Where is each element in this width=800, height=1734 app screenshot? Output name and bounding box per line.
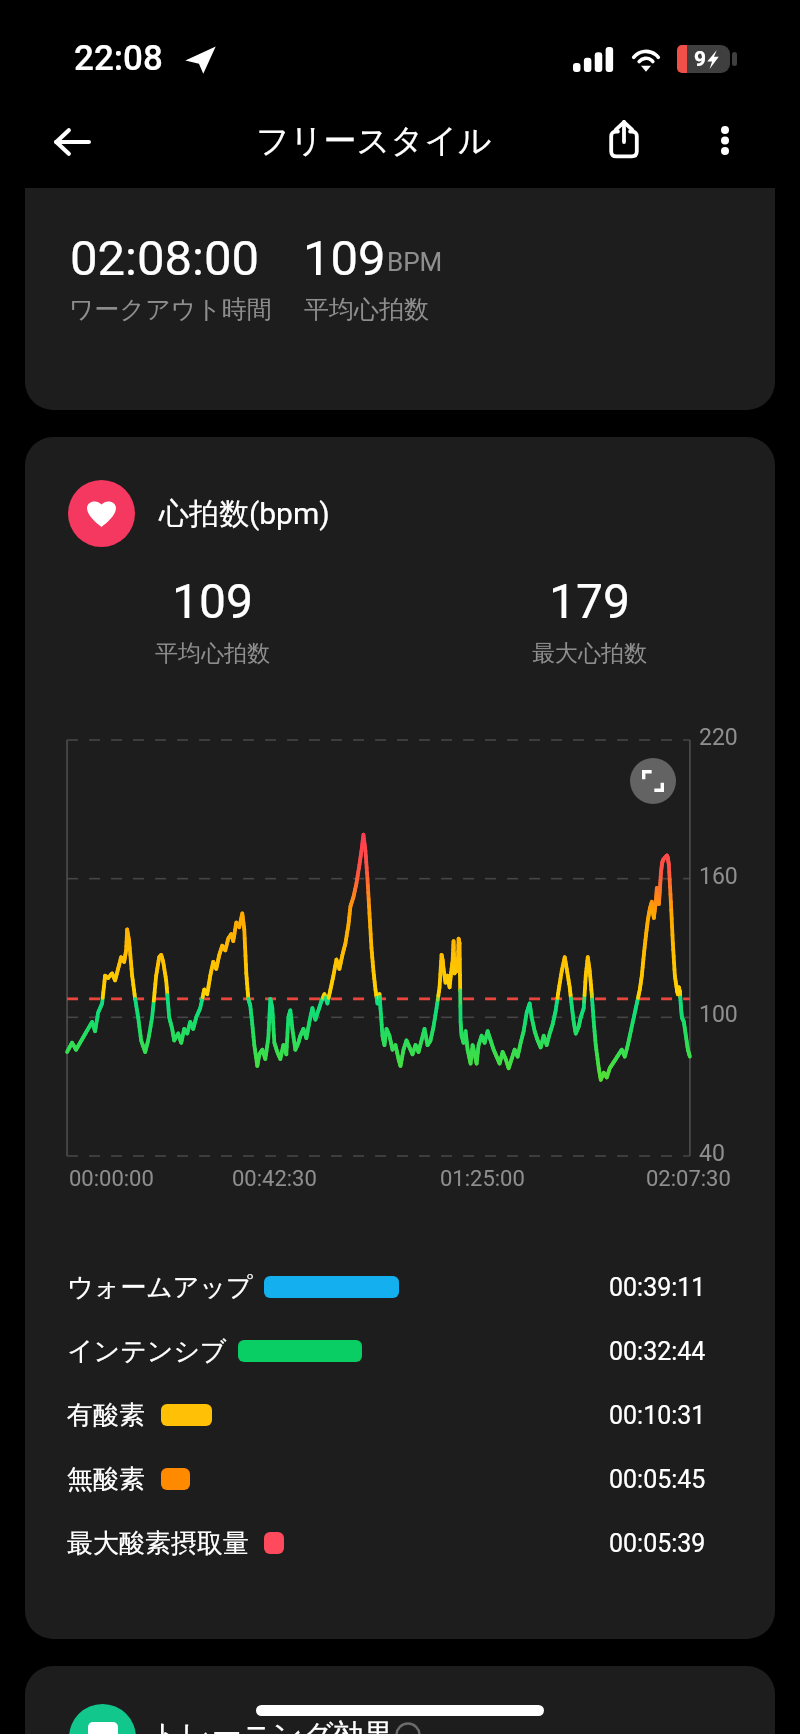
staticText: 00:05:45 — [609, 1465, 706, 1494]
staticText: 220 — [699, 724, 738, 751]
button[interactable]: Back — [42, 112, 102, 172]
staticText: 無酸素 — [67, 1463, 145, 1496]
staticText: 109 — [172, 573, 253, 629]
staticText: 02:07:30 — [646, 1166, 731, 1192]
staticText: ワークアウト時間 — [69, 294, 272, 325]
staticText: トレーニング効果 — [150, 1716, 394, 1734]
staticText: ウォームアップ — [67, 1271, 253, 1304]
staticText: 160 — [699, 863, 738, 890]
button[interactable]: Share — [594, 108, 654, 168]
staticText: BPM — [387, 247, 443, 277]
staticText: 00:10:31 — [609, 1401, 706, 1430]
staticText: 100 — [699, 1001, 738, 1028]
button[interactable]: 有酸素 — [25, 1383, 775, 1447]
other: Info — [395, 1722, 421, 1734]
button[interactable]: 最大酸素摂取量 — [25, 1511, 775, 1575]
staticText: 00:39:11 — [609, 1273, 706, 1302]
staticText: 40 — [699, 1140, 725, 1167]
staticText: 00:00:00 — [69, 1166, 154, 1192]
staticText: 最大酸素摂取量 — [67, 1527, 249, 1560]
staticText: 心拍数(bpm) — [159, 495, 330, 533]
staticText: フリースタイル — [256, 120, 492, 162]
staticText: 00:32:44 — [609, 1337, 706, 1366]
button[interactable]: トレーニング効果 — [25, 1666, 775, 1734]
staticText: 00:05:39 — [609, 1529, 706, 1558]
button[interactable]: More options — [695, 110, 755, 170]
staticText: 02:08:00 — [70, 230, 259, 287]
staticText: 最大心拍数 — [532, 639, 647, 668]
button[interactable]: 02:08:00 — [25, 188, 775, 410]
staticText: 00:42:30 — [232, 1166, 317, 1192]
staticText: インテンシブ — [67, 1335, 227, 1368]
staticText: 9 — [694, 47, 707, 72]
staticText: 109 — [303, 230, 386, 287]
button[interactable]: ウォームアップ — [25, 1255, 775, 1319]
button[interactable]: 無酸素 — [25, 1447, 775, 1511]
staticText: 179 — [549, 573, 630, 629]
staticText: 平均心拍数 — [155, 639, 270, 668]
staticText: 平均心拍数 — [304, 294, 429, 325]
button[interactable]: インテンシブ — [25, 1319, 775, 1383]
staticText: 01:25:00 — [440, 1166, 525, 1192]
staticText: 有酸素 — [67, 1399, 145, 1432]
button[interactable]: Fullscreen — [630, 758, 676, 804]
staticText: 22:08 — [74, 38, 163, 79]
